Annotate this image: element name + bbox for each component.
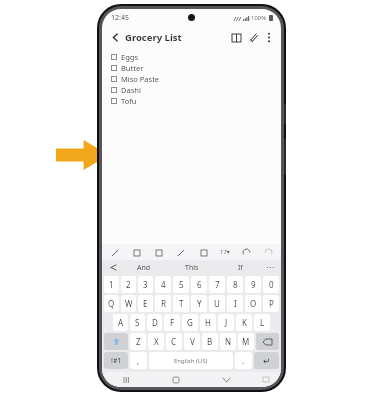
button[interactable]: This [168, 260, 216, 275]
staticText: Y [197, 298, 202, 309]
button[interactable]: A [113, 314, 128, 331]
staticText: 3 [143, 279, 148, 290]
button[interactable]: R [155, 295, 171, 312]
button[interactable]: 6 [191, 276, 207, 293]
button[interactable]: 1 [104, 276, 119, 293]
staticText: ⋯ [266, 263, 274, 272]
button[interactable]: Home [151, 372, 201, 387]
button[interactable]: , [130, 352, 147, 369]
button[interactable]: P [263, 295, 279, 312]
staticText: Z [136, 336, 141, 347]
staticText: W [125, 298, 133, 309]
button[interactable]: Previous suggestions [108, 262, 119, 273]
staticText: . [242, 355, 245, 366]
button[interactable]: B [202, 333, 218, 350]
button[interactable]: Checklist [131, 247, 142, 258]
button[interactable]: 5 [173, 276, 189, 293]
staticText: Butter [121, 63, 144, 73]
button[interactable]: !#1 [104, 352, 128, 369]
staticText: , [137, 355, 140, 366]
button[interactable]: Backspace [256, 333, 279, 350]
staticText: F [170, 317, 175, 328]
button[interactable]: 8 [227, 276, 243, 293]
staticText: 12:45 [111, 13, 129, 23]
staticText: ↵ [263, 356, 271, 366]
button[interactable]: English (US) [149, 352, 233, 369]
button[interactable]: 9 [245, 276, 261, 293]
button[interactable]: More suggestions [264, 262, 275, 273]
button[interactable]: If [216, 260, 264, 275]
button[interactable]: Butter [111, 62, 281, 73]
button[interactable]: L [254, 314, 270, 331]
button[interactable]: D [147, 314, 162, 331]
button[interactable]: 2 [121, 276, 136, 293]
staticText: V [190, 336, 195, 347]
button[interactable]: And [119, 260, 168, 275]
button[interactable]: 3 [138, 276, 153, 293]
button[interactable]: Eggs [111, 51, 281, 62]
button[interactable]: M [238, 333, 254, 350]
button[interactable]: . [235, 352, 252, 369]
staticText: D [152, 317, 158, 328]
staticText: S [135, 317, 140, 328]
button[interactable]: V [184, 333, 200, 350]
button[interactable]: Redo [263, 247, 274, 258]
staticText: L [260, 317, 265, 328]
button[interactable]: Keyboard layout [251, 372, 281, 387]
button[interactable]: Back [108, 30, 123, 45]
staticText: 8 [233, 279, 238, 290]
button[interactable]: T [173, 295, 189, 312]
button[interactable]: Q [104, 295, 119, 312]
button[interactable]: O [245, 295, 261, 312]
staticText: G [187, 317, 193, 328]
button[interactable]: Tofu [111, 95, 281, 106]
staticText: English (US) [174, 357, 208, 365]
button[interactable]: W [121, 295, 136, 312]
button[interactable]: View mode [229, 30, 244, 45]
button[interactable]: J [218, 314, 234, 331]
staticText: Tofu [121, 96, 137, 106]
button[interactable]: H [200, 314, 216, 331]
button[interactable]: K [236, 314, 252, 331]
button[interactable]: Undo [241, 247, 252, 258]
button[interactable]: Dashi [111, 84, 281, 95]
button[interactable]: Image [198, 247, 209, 258]
staticText: 1 [109, 279, 114, 290]
button[interactable]: List [153, 247, 164, 258]
button[interactable]: Text style [175, 247, 186, 258]
staticText: H [205, 317, 211, 328]
button[interactable]: Y [191, 295, 207, 312]
button[interactable]: X [148, 333, 164, 350]
staticText: 7 [215, 279, 220, 290]
button[interactable]: G [182, 314, 198, 331]
button[interactable]: Enter [254, 352, 279, 369]
button[interactable]: 7 [209, 276, 225, 293]
staticText: !#1 [111, 356, 122, 366]
button[interactable]: S [130, 314, 145, 331]
staticText: O [250, 298, 257, 309]
button[interactable]: I [227, 295, 243, 312]
button[interactable]: E [138, 295, 153, 312]
staticText: E [143, 298, 148, 309]
staticText: Eggs [121, 52, 138, 62]
button[interactable]: F [164, 314, 180, 331]
button[interactable]: Attach file [246, 30, 261, 45]
button[interactable]: Recents [102, 372, 151, 387]
button[interactable]: Z [130, 333, 146, 350]
button[interactable]: 4 [155, 276, 171, 293]
button[interactable]: C [166, 333, 182, 350]
button[interactable]: Pen [109, 247, 120, 258]
staticText: 9 [251, 279, 256, 290]
button[interactable]: U [209, 295, 225, 312]
button[interactable]: Hide keyboard [201, 372, 251, 387]
staticText: 0 [269, 279, 274, 290]
button[interactable]: Miso Paste [111, 73, 281, 84]
button[interactable]: N [220, 333, 236, 350]
button[interactable]: Shift [104, 333, 128, 350]
button[interactable]: 17▾ [220, 248, 230, 256]
button[interactable]: 0 [263, 276, 279, 293]
button[interactable]: More options [262, 31, 275, 44]
other: Arrow pointing to phone edge [56, 140, 109, 170]
staticText: U [214, 298, 220, 309]
staticText: N [225, 336, 232, 347]
